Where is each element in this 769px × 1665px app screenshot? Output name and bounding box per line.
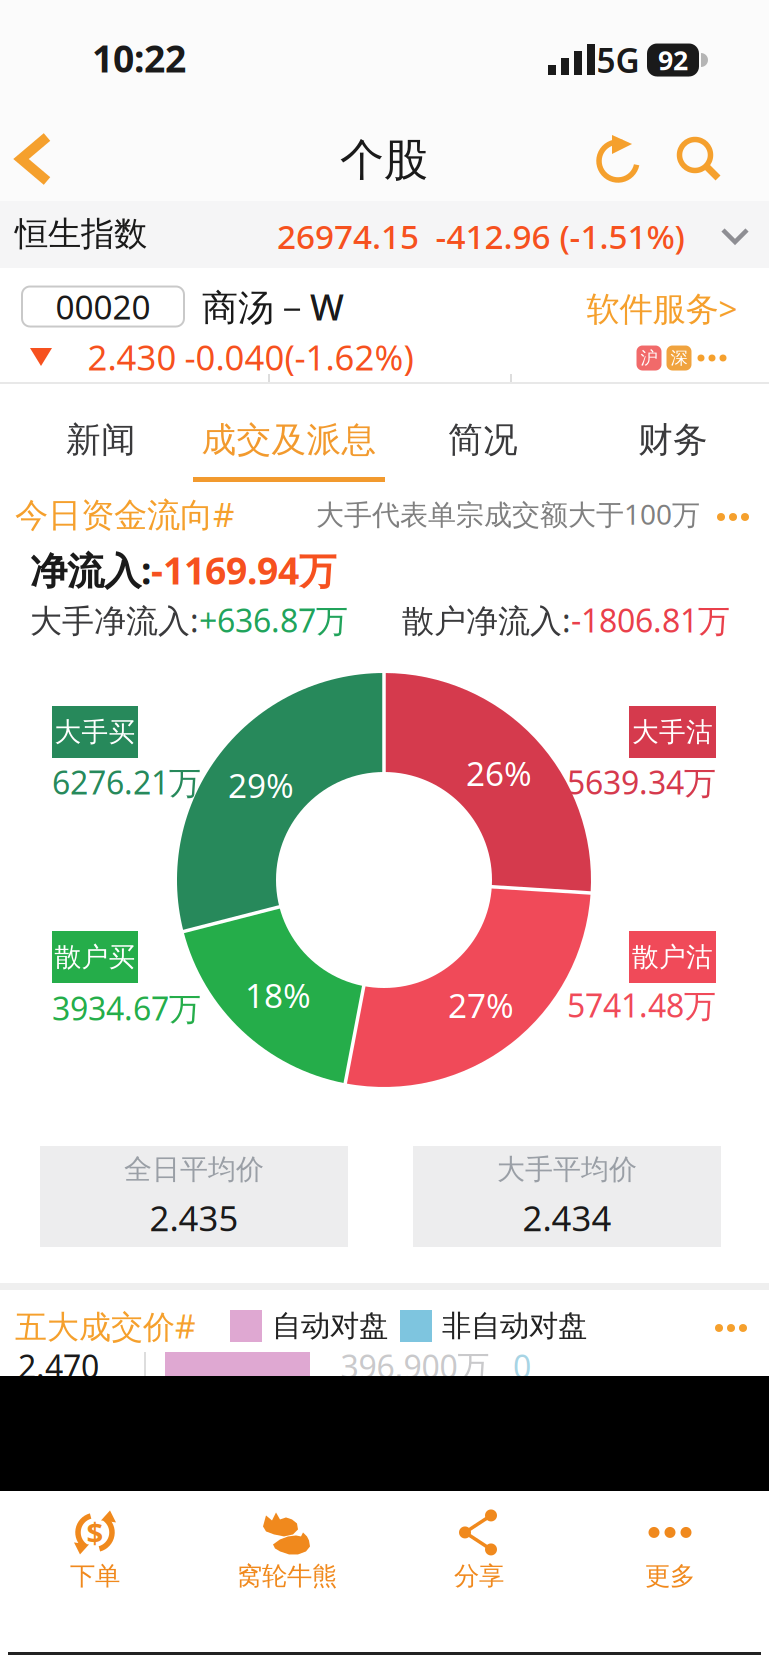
staticText: -1169.94万 — [151, 545, 336, 595]
button[interactable]: 00020 — [21, 285, 185, 327]
staticText: 非自动对盘 — [442, 1308, 587, 1344]
staticText: 成交及派息 — [201, 419, 376, 461]
staticText: 5639.34万 — [567, 761, 716, 803]
staticText: 个股 — [340, 133, 428, 187]
button[interactable]: 窝轮牛熊 — [197, 1503, 377, 1598]
staticText: 396,900万 — [340, 1345, 489, 1387]
staticText: 27% — [448, 983, 514, 1027]
staticText: 00020 — [55, 284, 150, 329]
staticText: +636.87万 — [199, 599, 348, 641]
button[interactable]: Search — [677, 137, 721, 181]
staticText: 财务 — [638, 419, 708, 461]
staticText: 5G — [596, 38, 639, 82]
staticText: 2.470 — [18, 1345, 99, 1387]
staticText: 92 — [658, 42, 688, 78]
button[interactable]: Back — [14, 132, 54, 186]
staticText: 大手代表单宗成交额大于100万 — [316, 495, 700, 533]
staticText: 29% — [228, 763, 294, 807]
staticText: -1806.81万 — [571, 599, 730, 641]
staticText: 全日平均价 — [124, 1152, 264, 1187]
button[interactable]: More markets — [697, 354, 727, 362]
staticText: 分享 — [454, 1560, 504, 1591]
button[interactable]: $ — [5, 1503, 185, 1598]
staticText: 6276.21万 — [52, 761, 201, 803]
staticText: 五大成交价# — [15, 1305, 196, 1347]
button[interactable]: 财务 — [598, 405, 748, 475]
button[interactable]: 分享 — [389, 1503, 569, 1598]
staticText: 00020 — [55, 284, 150, 329]
staticText: 窝轮牛熊 — [237, 1560, 337, 1591]
staticText: 18% — [245, 973, 311, 1017]
staticText: 大手净流入: — [30, 599, 199, 641]
staticText: 恒生指数 — [15, 213, 147, 254]
button[interactable]: Refresh — [594, 134, 642, 184]
staticText: 简况 — [448, 419, 518, 461]
staticText: 2.434 — [522, 1195, 611, 1241]
staticText: 大手沽 — [632, 716, 713, 748]
button[interactable]: 软件服务> — [586, 286, 737, 330]
staticText: 大手买 — [54, 716, 135, 748]
button[interactable]: 更多 — [580, 1503, 760, 1598]
staticText: -412.96 (-1.51%) — [435, 214, 684, 258]
staticText: 散户买 — [54, 941, 135, 973]
staticText: $ — [86, 1513, 103, 1552]
button[interactable]: 恒生指数 — [0, 201, 769, 268]
staticText: 沪 — [640, 347, 657, 369]
staticText: 0 — [513, 1345, 531, 1387]
staticText: 下单 — [70, 1560, 120, 1591]
staticText: 大手平均价 — [497, 1152, 637, 1187]
staticText: 26974.15 — [277, 214, 419, 258]
staticText: 26% — [466, 751, 532, 795]
staticText: 商汤－W — [202, 283, 344, 330]
staticText: 散户净流入: — [402, 599, 571, 641]
button[interactable]: 简况 — [408, 405, 558, 475]
staticText: 新闻 — [66, 419, 136, 461]
button[interactable]: More info — [717, 513, 749, 521]
staticText: 3934.67万 — [52, 987, 201, 1029]
staticText: 2.430 — [87, 334, 176, 380]
staticText: 软件服务> — [586, 286, 737, 330]
staticText: 更多 — [645, 1560, 695, 1591]
staticText: 2.435 — [149, 1195, 238, 1241]
staticText: 散户沽 — [632, 941, 713, 973]
button[interactable]: More prices — [715, 1324, 747, 1332]
staticText: -0.040(-1.62%) — [184, 334, 413, 380]
staticText: 5741.48万 — [567, 984, 716, 1026]
staticText: 深 — [670, 347, 687, 369]
button[interactable]: 新闻 — [26, 405, 176, 475]
button[interactable]: 成交及派息 — [174, 405, 404, 475]
staticText: 自动对盘 — [272, 1308, 388, 1344]
staticText: 今日资金流向# — [15, 492, 235, 536]
staticText: 净流入: — [30, 545, 151, 595]
staticText: 10:22 — [92, 33, 186, 83]
